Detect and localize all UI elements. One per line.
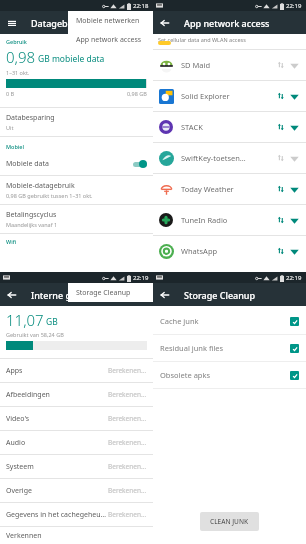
staticText: Residual junk files [160,343,290,353]
button[interactable]: Back [153,11,176,34]
button[interactable]: CLEAN JUNK [200,512,259,531]
button[interactable]: Residual junk files [153,335,306,361]
staticText: Cache junk [160,316,290,326]
button[interactable]: SD Maid [153,50,306,80]
button[interactable]: Betalingscyclus [0,205,153,233]
button[interactable]: Video's [0,407,153,430]
button[interactable]: Solid Explorer [153,81,306,111]
staticText: Mobiel [6,143,24,150]
staticText: Overige [6,486,108,496]
staticText: Databesparing [6,113,55,123]
staticText: 0,98 GB gebruikt tussen 1–31 okt. [6,192,93,199]
button[interactable]: Obsolete apks [153,362,306,388]
staticText: Audio [6,438,108,448]
staticText: Wifi [6,238,17,245]
staticText: 0,98 [6,47,36,67]
staticText: Gebruik [6,38,27,45]
staticText: Berekenen… [108,486,147,495]
staticText: Betalingscyclus [6,210,57,220]
staticText: 0,98 GB [127,90,147,97]
button[interactable]: App network access [68,30,153,49]
staticText: Storage Cleanup [184,289,256,301]
staticText: Berekenen… [108,390,147,399]
staticText: Obsolete apks [160,370,290,380]
staticText: STACK [181,122,277,132]
staticText: 22:19 [133,274,149,282]
staticText: Apps [6,366,108,376]
button[interactable]: Storage Cleanup [68,283,153,302]
staticText: Berekenen… [108,366,147,375]
staticText: App network access [184,17,270,29]
staticText: Berekenen… [108,462,147,471]
staticText: SD Maid [181,60,277,70]
staticText: 22:19 [286,2,302,10]
button[interactable]: TuneIn Radio [153,205,306,235]
staticText: Mobiele data [6,159,133,169]
button[interactable]: Back [153,283,176,306]
staticText: Systeem [6,462,108,472]
button[interactable]: Mobiele data [0,153,153,175]
button[interactable]: Today Weather [153,174,306,204]
button[interactable]: Databesparing [0,108,153,136]
staticText: 22:19 [286,274,302,282]
staticText: GB mobiele data [38,53,105,65]
button[interactable]: Audio [0,431,153,454]
button[interactable]: Overige [0,479,153,502]
staticText: Datagebru [31,17,78,29]
staticText: Interne ge [31,289,77,301]
button[interactable]: WhatsApp [153,236,306,266]
staticText: CLEAN JUNK [210,517,249,526]
staticText: 1–31 okt. [6,69,30,76]
staticText: Today Weather [181,184,277,194]
staticText: Mobiele netwerken [76,16,140,26]
staticText: SwiftKey-toetsen… [181,153,277,163]
staticText: Storage Cleanup [76,288,131,298]
staticText: Verkennen [6,531,42,541]
button[interactable]: Menu [0,11,23,34]
staticText: GB [46,316,58,328]
staticText: Video's [6,414,108,424]
button[interactable]: STACK [153,112,306,142]
staticText: 0 B [6,90,15,97]
button[interactable]: Mobiele-datagebruik [0,176,153,204]
staticText: WhatsApp [181,246,277,256]
button[interactable]: SwiftKey-toetsen… [153,143,306,173]
staticText: Berekenen… [108,438,147,447]
button[interactable]: Mobiele netwerken [68,11,153,30]
staticText: Berekenen… [108,414,147,423]
button[interactable]: Back [0,283,23,306]
button[interactable]: Apps [0,359,153,382]
staticText: Afbeeldingen [6,390,108,400]
staticText: Maandelijks vanaf 1 [6,221,58,228]
staticText: 22:18 [133,2,149,10]
staticText: Uit [6,124,14,131]
button[interactable]: Afbeeldingen [0,383,153,406]
staticText: Solid Explorer [181,91,277,101]
staticText: 11,07 [6,310,44,330]
staticText: App network access [76,35,142,45]
button[interactable]: Verkennen [0,527,153,544]
button[interactable]: Systeem [0,455,153,478]
staticText: Gegevens in het cachegeheugen [6,510,108,520]
staticText: Berekenen… [108,510,147,519]
staticText: Gebruikt van 58,24 GB [6,331,64,338]
staticText: TuneIn Radio [181,215,277,225]
staticText: Mobiele-datagebruik [6,181,75,191]
staticText: Set cellular data and WLAN access [158,36,246,43]
button[interactable]: Gegevens in het cachegeheugen [0,503,153,526]
button[interactable]: Cache junk [153,308,306,334]
